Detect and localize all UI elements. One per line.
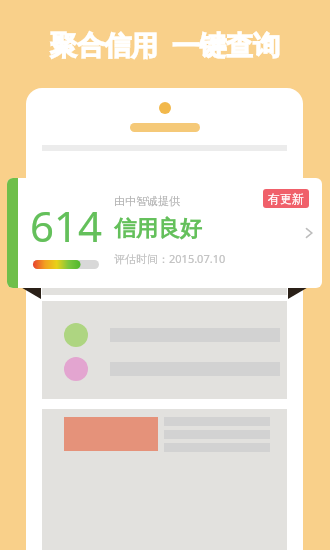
button[interactable]: 614 [7,178,322,288]
staticText: 聚合信用 一键查询 [0,26,330,63]
button[interactable]: 有更新 [263,189,309,208]
staticText: 评估时间：2015.07.10 [114,251,226,266]
staticText: 有更新 [268,191,304,206]
staticText: 信用良好 [114,215,202,243]
staticText: 由中智诚提供 [114,194,180,208]
staticText: 614 [30,197,103,254]
